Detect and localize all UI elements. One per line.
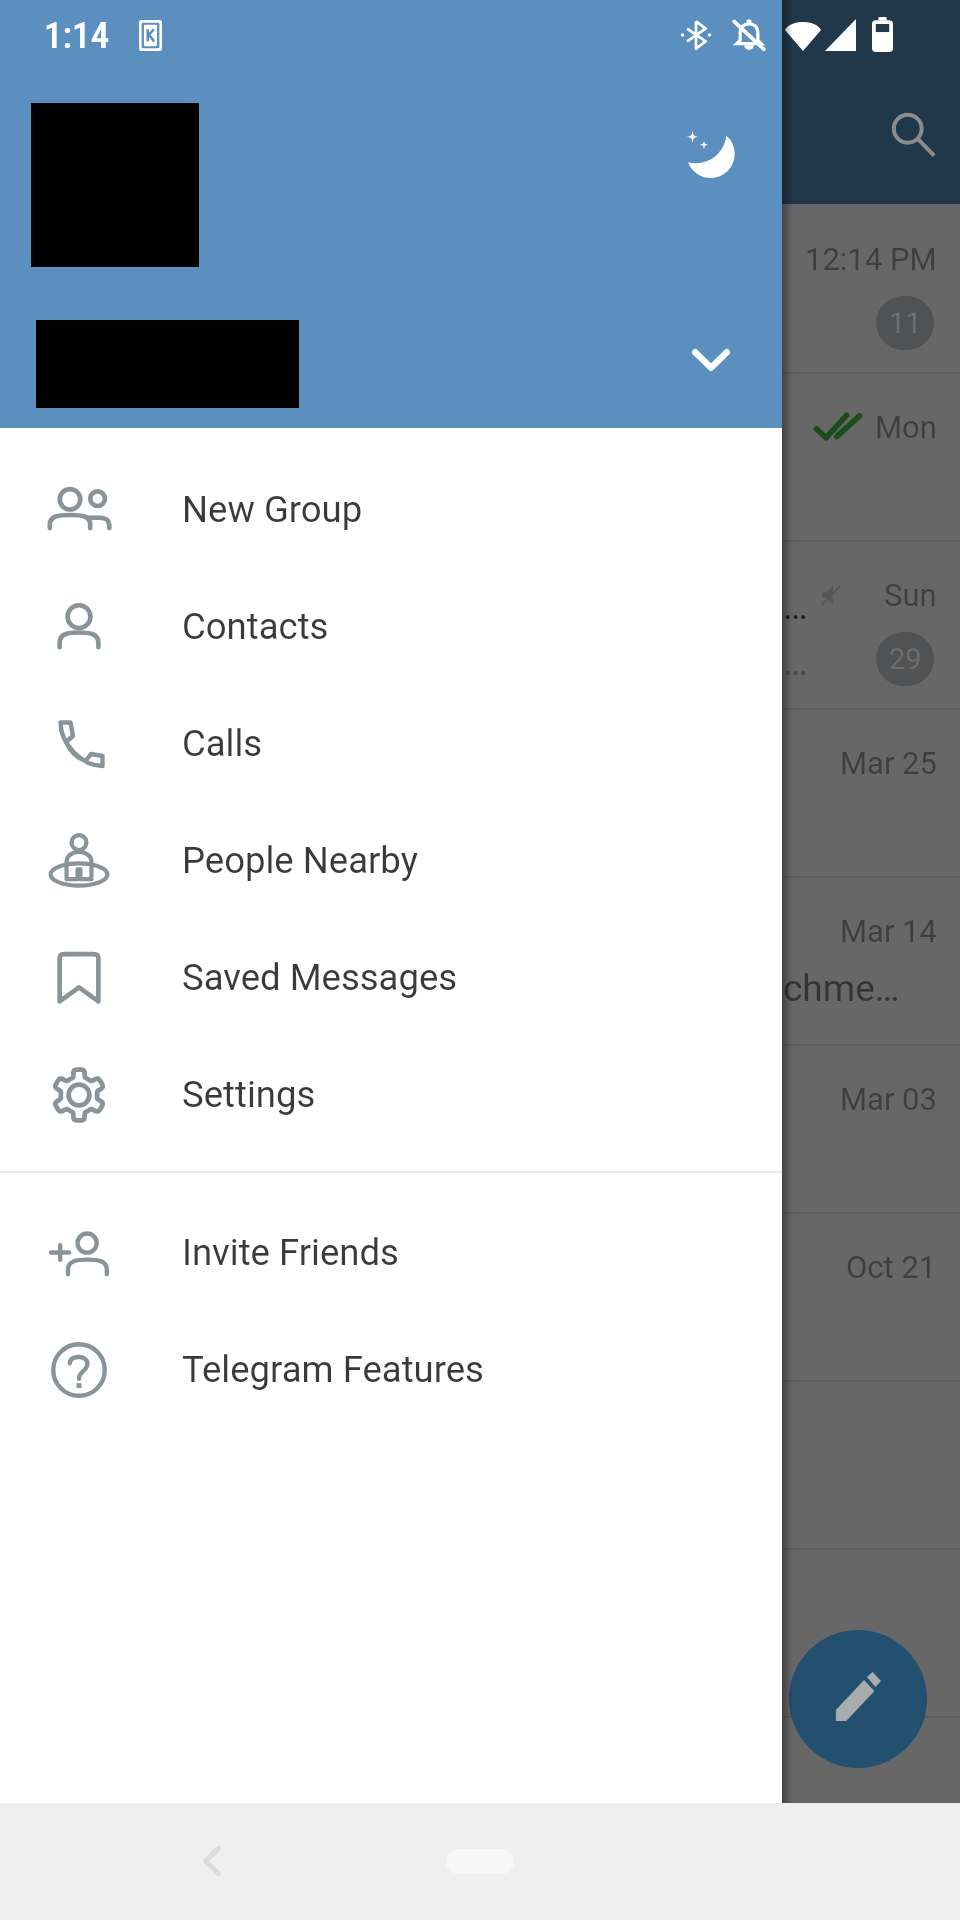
staticText: 29 [889, 642, 922, 676]
staticText: 11 [889, 306, 922, 340]
button[interactable] [0, 708, 960, 876]
staticText: New Group [182, 488, 363, 531]
button[interactable] [0, 1548, 960, 1716]
button[interactable]: 1:14 [0, 0, 782, 428]
staticText: Calls [182, 722, 263, 765]
button[interactable]: Contacts [0, 568, 782, 685]
staticText: chme… [783, 967, 900, 1010]
button[interactable]: Settings [0, 1036, 782, 1153]
staticText: Mon [875, 409, 937, 445]
button[interactable]: Night mode [655, 98, 767, 210]
staticText: 12:14 PM [805, 241, 937, 277]
staticText: Oct 21 [846, 1249, 937, 1285]
button[interactable]: Back [175, 1824, 249, 1898]
button[interactable] [0, 1380, 960, 1548]
button[interactable] [0, 204, 960, 372]
staticText: Telegram Features [182, 1348, 484, 1391]
button[interactable]: Search [882, 104, 944, 166]
staticText: Contacts [182, 605, 329, 648]
staticText: Mar 25 [840, 745, 937, 781]
button[interactable] [0, 372, 960, 540]
button[interactable]: Telegram Features [0, 1311, 782, 1428]
staticText: Mar 03 [840, 1081, 937, 1117]
staticText: … [783, 585, 808, 628]
staticText: 1:14 [44, 14, 110, 57]
staticText: People Nearby [182, 839, 418, 882]
staticText: Mar 14 [840, 913, 937, 949]
button[interactable] [0, 876, 960, 1044]
button[interactable] [0, 1044, 960, 1212]
staticText: Sun [884, 577, 937, 613]
staticText: Invite Friends [182, 1231, 399, 1274]
staticText: Saved Messages [182, 956, 458, 999]
button[interactable]: Calls [0, 685, 782, 802]
button[interactable]: New Group [0, 451, 782, 568]
button[interactable] [0, 1212, 960, 1380]
button[interactable]: Expand account list [655, 304, 767, 416]
button[interactable]: People Nearby [0, 802, 782, 919]
button[interactable]: New message [789, 1630, 927, 1768]
button[interactable]: Invite Friends [0, 1194, 782, 1311]
staticText: … [783, 641, 808, 684]
staticText: Settings [182, 1073, 316, 1116]
button[interactable] [0, 540, 960, 708]
button[interactable]: Saved Messages [0, 919, 782, 1036]
